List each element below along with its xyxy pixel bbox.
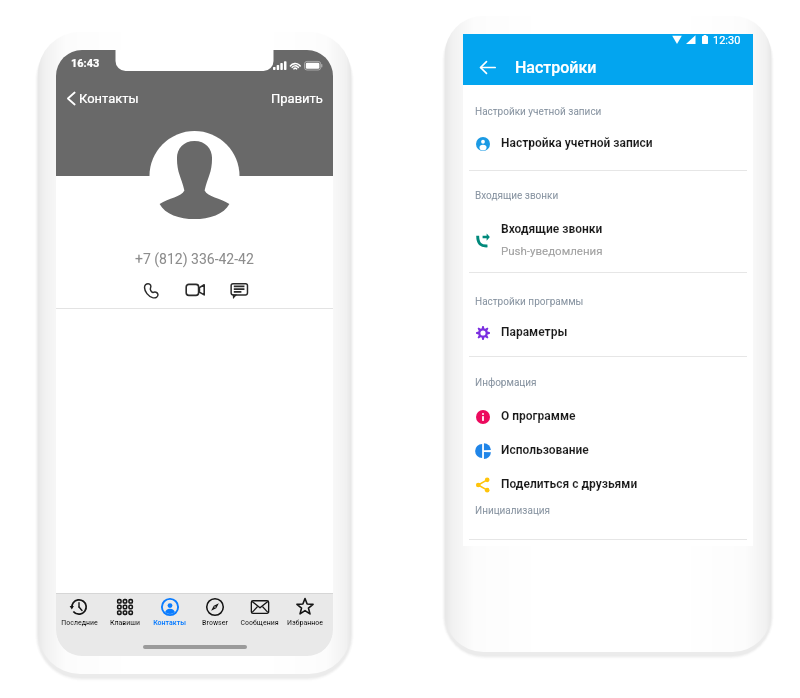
button[interactable]: Настройка учетной записи xyxy=(463,126,753,160)
button[interactable]: Входящие звонки xyxy=(463,216,753,262)
staticText: Browser xyxy=(202,619,228,627)
staticText: Контакты xyxy=(153,619,186,627)
staticText: +7 (812) 336-42-42 xyxy=(135,251,254,267)
button[interactable]: О программе xyxy=(463,399,753,433)
staticText: Push-уведомления xyxy=(501,244,603,257)
button[interactable]: Использование xyxy=(463,433,753,467)
button[interactable]: Browser xyxy=(192,594,237,627)
button[interactable]: Контакты xyxy=(147,594,192,627)
button[interactable]: Message xyxy=(229,280,249,300)
staticText: Контакты xyxy=(79,91,139,106)
staticText: Сообщения xyxy=(240,619,279,627)
staticText: Настройки xyxy=(515,58,597,77)
staticText: Инициализация xyxy=(475,505,551,517)
staticText: Входящие звонки xyxy=(475,190,559,202)
staticText: 12:30 xyxy=(713,34,741,45)
staticText: Настройки учетной записи xyxy=(475,106,602,118)
staticText: Использование xyxy=(501,443,589,457)
staticText: Поделиться с друзьями xyxy=(501,477,638,491)
button[interactable]: Править xyxy=(268,88,326,109)
button[interactable]: Сообщения xyxy=(237,594,282,627)
button[interactable]: Call xyxy=(141,280,161,300)
staticText: Настройка учетной записи xyxy=(501,136,653,150)
staticText: Параметры xyxy=(501,325,568,339)
staticText: Клавиши xyxy=(110,619,140,627)
button[interactable]: Поделиться с друзьями xyxy=(463,467,753,501)
staticText: Настройки программы xyxy=(475,296,584,308)
button[interactable]: Back xyxy=(471,51,503,83)
staticText: Избранное xyxy=(287,619,323,627)
button[interactable]: Параметры xyxy=(463,315,753,349)
button[interactable]: Последние xyxy=(56,594,102,627)
button[interactable]: Избранное xyxy=(282,594,327,627)
staticText: Последние xyxy=(61,619,98,627)
button[interactable]: Video call xyxy=(185,280,205,300)
staticText: О программе xyxy=(501,409,576,423)
staticText: Входящие звонки xyxy=(501,222,603,236)
button[interactable]: Клавиши xyxy=(102,594,147,627)
staticText: 16:43 xyxy=(71,57,100,70)
button[interactable]: Контакты xyxy=(65,88,141,109)
staticText: Информация xyxy=(475,377,537,389)
